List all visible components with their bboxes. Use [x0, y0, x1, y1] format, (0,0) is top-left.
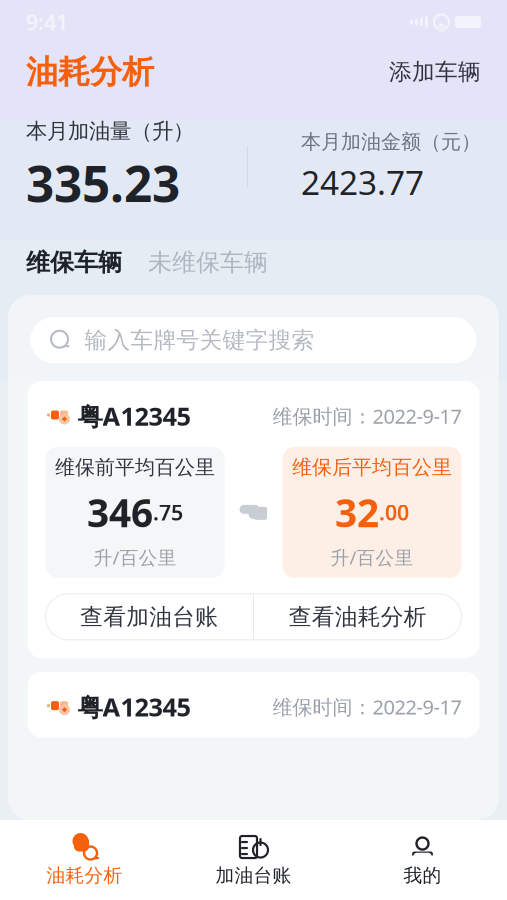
staticText: 本月加油金额（元）: [301, 129, 481, 154]
staticText: 加油台账: [215, 864, 291, 887]
staticText: 维保前平均百公里: [55, 455, 215, 480]
staticText: 查看加油台账: [80, 603, 218, 631]
staticText: 升/百公里: [93, 545, 176, 570]
staticText: 32: [335, 486, 379, 538]
staticText: 维保后平均百公里: [292, 455, 452, 480]
staticText: 2423.77: [301, 160, 424, 204]
staticText: .00: [379, 498, 409, 526]
staticText: 输入车牌号关键字搜索: [84, 326, 314, 354]
staticText: 油耗分析: [46, 864, 122, 887]
staticText: 维保时间：2022-9-17: [272, 693, 461, 720]
button[interactable]: 添加车辆: [389, 58, 481, 86]
staticText: 维保时间：2022-9-17: [272, 403, 461, 429]
staticText: 未维保车辆: [148, 248, 268, 277]
staticText: 我的: [403, 864, 441, 887]
button[interactable]: 查看油耗分析: [254, 594, 461, 640]
staticText: 粤A12345: [77, 690, 190, 723]
button[interactable]: 查看加油台账: [45, 594, 253, 640]
staticText: 添加车辆: [389, 58, 481, 86]
staticText: 查看油耗分析: [289, 603, 427, 631]
button[interactable]: 加油台账: [169, 830, 338, 890]
button[interactable]: 我的: [338, 830, 507, 890]
staticText: 油耗分析: [26, 52, 154, 92]
staticText: .75: [153, 498, 183, 526]
button[interactable]: 油耗分析: [0, 830, 169, 890]
button[interactable]: 维保车辆: [26, 248, 122, 277]
staticText: 346: [87, 486, 153, 538]
staticText: 9:41: [26, 8, 68, 36]
staticText: 升/百公里: [330, 545, 413, 570]
button[interactable]: 未维保车辆: [148, 248, 268, 277]
staticText: 335.23: [26, 150, 180, 216]
staticText: 本月加油量（升）: [26, 118, 194, 144]
staticText: 维保车辆: [26, 248, 122, 277]
staticText: 粤A12345: [77, 399, 190, 433]
